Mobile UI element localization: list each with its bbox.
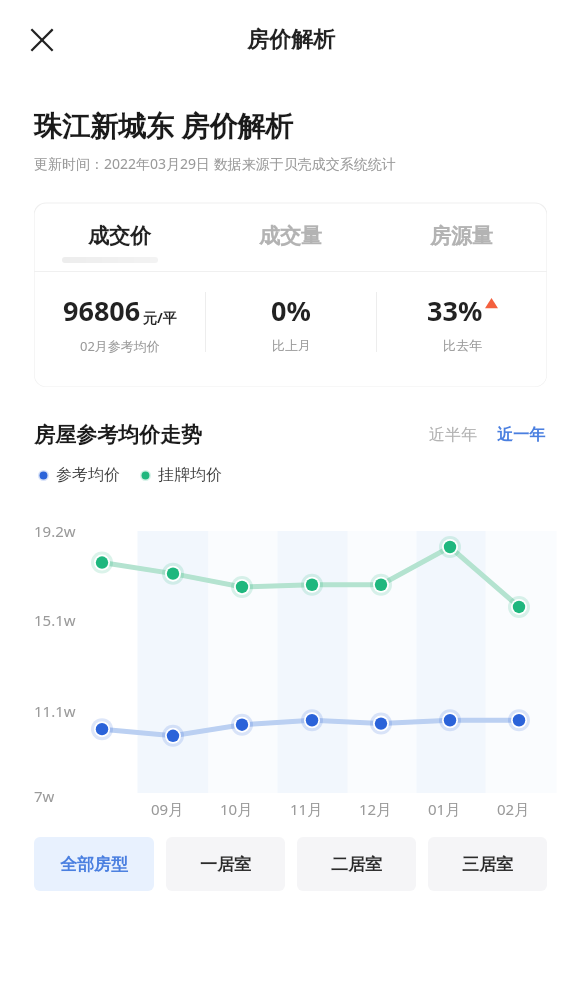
staticText: 10月 <box>220 799 253 819</box>
button[interactable]: 近一年 <box>491 421 551 449</box>
staticText: 房屋参考均价走势 <box>34 422 202 448</box>
staticText: 元/平 <box>143 308 177 327</box>
staticText: 全部房型 <box>60 854 128 875</box>
staticText: 比上月 <box>272 337 311 353</box>
button[interactable]: 成交量 <box>205 215 376 257</box>
button[interactable]: 成交价 <box>34 215 205 257</box>
staticText: 01月 <box>428 799 461 819</box>
staticText: 成交量 <box>259 223 322 249</box>
staticText: 02月 <box>497 799 530 819</box>
staticText: 09月 <box>151 799 184 819</box>
staticText: 02月参考均价 <box>80 337 160 355</box>
staticText: 比去年 <box>443 337 482 353</box>
staticText: 15.1w <box>34 610 76 630</box>
staticText: 12月 <box>359 799 392 819</box>
staticText: 11月 <box>290 799 323 819</box>
staticText: 参考均价 <box>56 465 120 485</box>
staticText: 挂牌均价 <box>158 465 222 485</box>
staticText: 7w <box>34 786 55 806</box>
staticText: 珠江新城东 房价解析 <box>34 106 294 144</box>
staticText: 一居室 <box>200 854 251 875</box>
staticText: 三居室 <box>462 854 513 875</box>
staticText: 19.2w <box>34 521 76 541</box>
button[interactable]: 一居室 <box>166 837 285 891</box>
button[interactable]: Close <box>20 18 64 62</box>
button[interactable]: 全部房型 <box>34 837 154 891</box>
staticText: 33% <box>427 292 483 329</box>
staticText: 二居室 <box>331 854 382 875</box>
staticText: 房源量 <box>430 223 493 249</box>
staticText: 0% <box>271 292 311 329</box>
button[interactable]: 三居室 <box>428 837 547 891</box>
button[interactable]: 近半年 <box>423 421 483 449</box>
staticText: 成交价 <box>88 223 151 249</box>
staticText: 更新时间：2022年03月29日 数据来源于贝壳成交系统统计 <box>34 154 396 173</box>
staticText: 近半年 <box>429 425 477 445</box>
staticText: 11.1w <box>34 701 76 721</box>
button[interactable]: 房源量 <box>376 215 547 257</box>
staticText: 96806 <box>63 292 141 329</box>
staticText: 近一年 <box>497 425 545 445</box>
staticText: 房价解析 <box>247 26 335 54</box>
button[interactable]: 二居室 <box>297 837 416 891</box>
